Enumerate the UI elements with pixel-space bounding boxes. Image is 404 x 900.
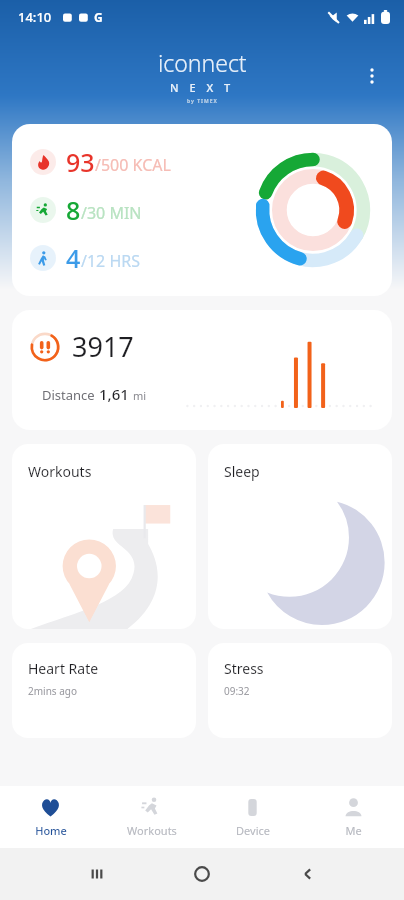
button[interactable]: 93 [12, 124, 392, 296]
staticText: 14:10 [18, 8, 52, 26]
button[interactable]: Heart Rate [12, 643, 196, 738]
staticText: Device [236, 823, 270, 838]
button[interactable]: Home [0, 786, 101, 848]
staticText: 4 [66, 241, 81, 275]
button[interactable]: More options [352, 56, 392, 96]
button[interactable]: 3917 [12, 310, 392, 430]
staticText: G [94, 9, 103, 25]
staticText: 09:32 [224, 684, 250, 698]
staticText: Heart Rate [28, 659, 99, 678]
staticText: Workouts [28, 462, 92, 481]
staticText: iconnect [158, 47, 247, 78]
staticText: Distance [42, 386, 99, 404]
staticText: Home [35, 823, 67, 838]
button[interactable]: Device [202, 786, 303, 848]
staticText: Stress [224, 659, 264, 678]
staticText: /12 HRS [81, 250, 141, 272]
staticText: 2mins ago [28, 684, 78, 698]
staticText: 8 [66, 193, 81, 227]
staticText: Workouts [127, 823, 177, 838]
staticText: Me [345, 823, 362, 838]
button[interactable]: Workouts [101, 786, 202, 848]
button[interactable]: Stress [208, 643, 392, 738]
button[interactable]: Sleep [208, 444, 392, 629]
button[interactable]: Me [303, 786, 404, 848]
staticText: mi [133, 388, 147, 403]
staticText: 1,61 [99, 384, 133, 404]
staticText: /30 MIN [81, 202, 142, 224]
staticText: 3917 [72, 328, 134, 365]
staticText: 93 [66, 145, 95, 179]
button[interactable]: Workouts [12, 444, 196, 629]
staticText: /500 KCAL [95, 154, 171, 176]
staticText: Sleep [224, 462, 260, 481]
staticText: N E X T [170, 80, 235, 95]
staticText: by TIMEX [187, 98, 218, 105]
